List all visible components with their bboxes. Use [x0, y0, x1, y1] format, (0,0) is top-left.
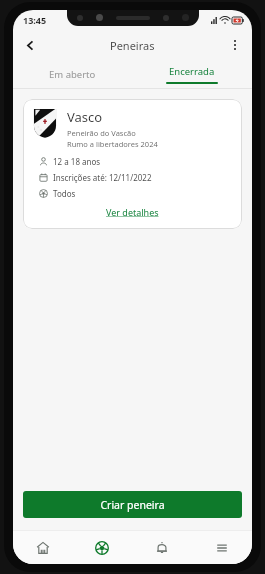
staticText: Peneirão do Vascão — [67, 128, 136, 138]
button[interactable]: Notificações — [132, 531, 192, 564]
staticText: Criar peneira — [100, 498, 165, 512]
button[interactable]: Peneiras — [72, 531, 132, 564]
staticText: Inscrições até: 12/11/2022 — [53, 172, 152, 183]
staticText: 13:45 — [23, 14, 47, 26]
button[interactable]: Encerrada — [132, 60, 252, 88]
button[interactable]: Menu — [192, 531, 252, 564]
staticText: Rumo a libertadores 2024 — [67, 139, 158, 149]
staticText: Encerrada — [169, 65, 215, 78]
staticText: Em aberto — [49, 68, 96, 81]
button[interactable]: Em aberto — [13, 60, 132, 88]
button[interactable]: Voltar — [17, 32, 43, 58]
button[interactable]: Ver detalhes — [102, 204, 163, 220]
button[interactable]: Vasco — [23, 99, 242, 229]
staticText: Vasco — [67, 108, 103, 126]
staticText: Ver detalhes — [106, 206, 159, 218]
button[interactable]: Mais opções — [222, 32, 248, 58]
button[interactable]: Início — [13, 531, 72, 564]
button[interactable]: Criar peneira — [23, 491, 242, 518]
staticText: Todos — [53, 188, 76, 199]
staticText: Peneiras — [110, 38, 155, 53]
staticText: 12 a 18 anos — [53, 156, 101, 167]
